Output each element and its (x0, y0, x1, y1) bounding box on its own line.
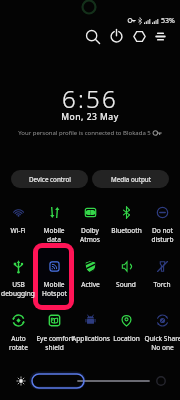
staticText: debugging (1, 289, 35, 298)
button[interactable]: Rotate (131, 28, 148, 45)
staticText: Sound (116, 280, 136, 289)
button[interactable]: Settings (152, 28, 169, 45)
staticText: Eye comfort (36, 334, 72, 343)
button[interactable]: Eye comfort (36, 307, 72, 361)
staticText: Location (113, 334, 140, 343)
staticText: Your personal profile is connected to Bl… (18, 129, 151, 137)
button[interactable]: Device control (11, 170, 88, 188)
button[interactable]: Power (108, 28, 125, 45)
button[interactable]: Auto (0, 307, 36, 361)
button[interactable]: Wi-Fi (0, 199, 36, 253)
staticText: Dolby (81, 226, 99, 235)
button[interactable]: Sound (108, 253, 144, 307)
staticText: Media output (111, 175, 151, 184)
staticText: Atmos (80, 235, 100, 244)
button[interactable]: Active (72, 253, 108, 307)
staticText: Active (81, 280, 100, 289)
staticText: data (47, 235, 61, 244)
staticText: Mobile (43, 226, 65, 235)
staticText: Auto (11, 334, 26, 343)
staticText: USB (12, 280, 25, 289)
button[interactable]: Location (108, 307, 144, 361)
staticText: 53% (161, 16, 175, 26)
staticText: shield (45, 343, 64, 352)
button[interactable]: USB (0, 253, 36, 307)
staticText: Wi-Fi (10, 226, 26, 235)
button[interactable]: Do not (144, 199, 180, 253)
staticText: Device control (29, 175, 71, 184)
staticText: Torch (153, 280, 171, 289)
button[interactable]: Bluetooth (108, 199, 144, 253)
button[interactable]: Search (84, 28, 101, 45)
button[interactable]: Brightness (30, 373, 84, 388)
staticText: Do not (152, 226, 173, 235)
staticText: Applications (72, 334, 108, 343)
button[interactable]: Torch (144, 253, 180, 307)
staticText: disturb (151, 235, 174, 244)
staticText: No one (151, 343, 174, 352)
button[interactable]: Mobile (36, 253, 72, 307)
button[interactable]: Mobile (36, 199, 72, 253)
button[interactable]: Brightness settings (155, 375, 167, 387)
button[interactable]: Quick Share (144, 307, 180, 361)
staticText: Mobile (43, 280, 65, 289)
staticText: Bluetooth (111, 226, 142, 235)
button[interactable]: Media output (92, 170, 169, 188)
button[interactable]: Applications (72, 307, 108, 361)
staticText: Hotspot (42, 289, 67, 298)
staticText: Mon, 23 May (61, 111, 119, 123)
staticText: rotate (9, 343, 28, 352)
staticText: 6:56 (62, 82, 118, 115)
staticText: Quick Share (144, 334, 180, 343)
button[interactable]: Dolby (72, 199, 108, 253)
